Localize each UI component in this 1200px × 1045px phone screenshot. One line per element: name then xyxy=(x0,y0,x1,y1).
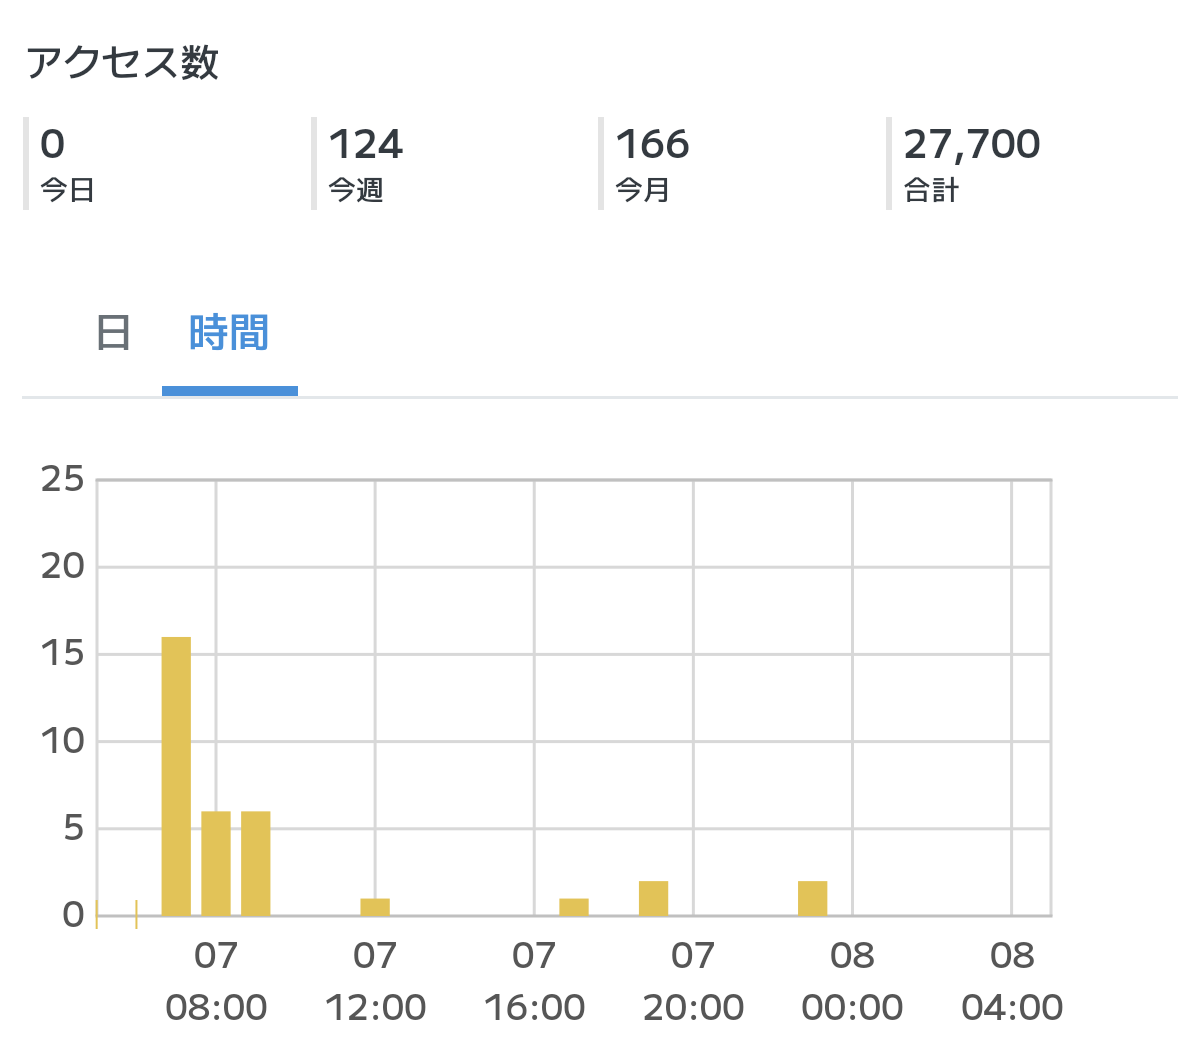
staticText: 08 xyxy=(990,927,1035,978)
button[interactable]: 27,700 xyxy=(886,117,1156,211)
staticText: 今日 xyxy=(40,168,97,209)
staticText: 00:00 xyxy=(801,979,904,1030)
button[interactable]: 166 xyxy=(598,117,868,211)
staticText: 16:00 xyxy=(483,979,586,1030)
staticText: 08 xyxy=(830,927,875,978)
staticText: 20:00 xyxy=(642,979,745,1030)
staticText: 合計 xyxy=(903,168,960,209)
staticText: 124 xyxy=(328,113,404,169)
staticText: 25 xyxy=(40,450,85,498)
staticText: 0 xyxy=(62,886,85,934)
staticText: 15 xyxy=(40,624,85,672)
staticText: 5 xyxy=(62,799,85,847)
staticText: 07 xyxy=(512,927,557,978)
staticText: 27,700 xyxy=(903,113,1041,169)
button[interactable]: 0 xyxy=(23,117,293,211)
button[interactable]: 124 xyxy=(311,117,581,211)
staticText: 12:00 xyxy=(324,979,427,1030)
staticText: 10 xyxy=(40,712,85,760)
button[interactable]: 日 xyxy=(45,296,181,392)
staticText: 20 xyxy=(40,537,85,585)
staticText: 07 xyxy=(194,927,239,978)
staticText: 07 xyxy=(353,927,398,978)
staticText: アクセス数 xyxy=(24,32,220,88)
button[interactable]: 時間 xyxy=(161,296,297,392)
staticText: 04:00 xyxy=(961,979,1064,1030)
staticText: 時間 xyxy=(188,299,270,358)
staticText: 今月 xyxy=(615,168,672,209)
staticText: 今週 xyxy=(328,168,385,209)
staticText: 0 xyxy=(40,113,66,169)
staticText: 166 xyxy=(615,113,691,169)
staticText: 07 xyxy=(671,927,716,978)
staticText: 日 xyxy=(93,299,134,358)
staticText: 08:00 xyxy=(165,979,268,1030)
